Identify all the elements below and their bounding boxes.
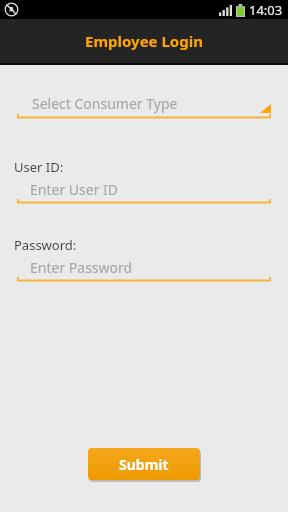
staticText: Enter Password [30, 258, 133, 277]
other: Open consumer type list [260, 104, 271, 113]
button[interactable]: Submit [88, 448, 200, 480]
button[interactable]: Enter User ID [17, 180, 271, 204]
button[interactable]: Enter Password [17, 258, 271, 282]
button[interactable]: Select Consumer Type [17, 92, 271, 119]
staticText: Employee Login [85, 31, 203, 51]
staticText: Enter User ID [30, 180, 119, 199]
staticText: Submit [119, 455, 169, 474]
staticText: 14:03 [249, 1, 283, 19]
staticText: Password: [14, 236, 77, 254]
staticText: User ID: [14, 158, 64, 176]
staticText: Select Consumer Type [32, 94, 178, 113]
